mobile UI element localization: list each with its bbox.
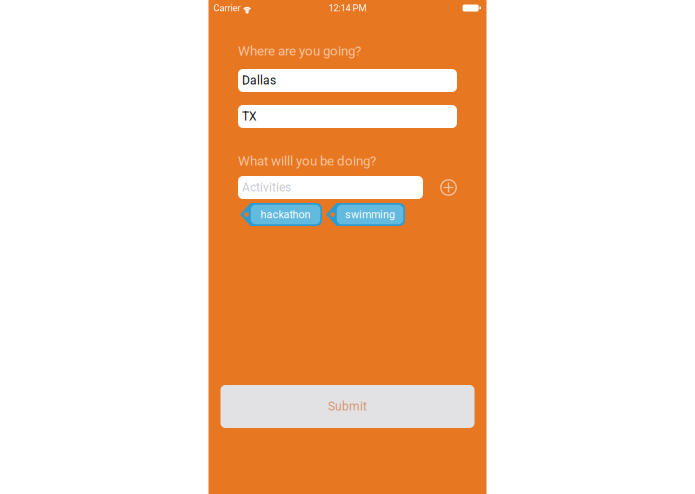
staticText: What willl you be doing? [238,153,376,169]
staticText: hackathon [261,208,311,221]
staticText: Carrier [213,2,240,13]
staticText: Submit [328,399,367,414]
button[interactable]: Dallas [238,69,457,92]
staticText: Dallas [242,73,276,88]
staticText: Activities [242,180,291,195]
button[interactable]: swimming [326,203,405,226]
staticText: swimming [345,208,395,221]
staticText: TX [242,109,257,124]
button[interactable]: hackathon [240,203,322,226]
button[interactable]: TX [238,105,457,128]
button[interactable]: Activities [238,176,423,199]
button[interactable]: Add activity [434,176,457,199]
staticText: 12:14 PM [328,2,366,13]
button[interactable]: Submit [220,385,474,428]
staticText: Where are you going? [238,43,361,59]
